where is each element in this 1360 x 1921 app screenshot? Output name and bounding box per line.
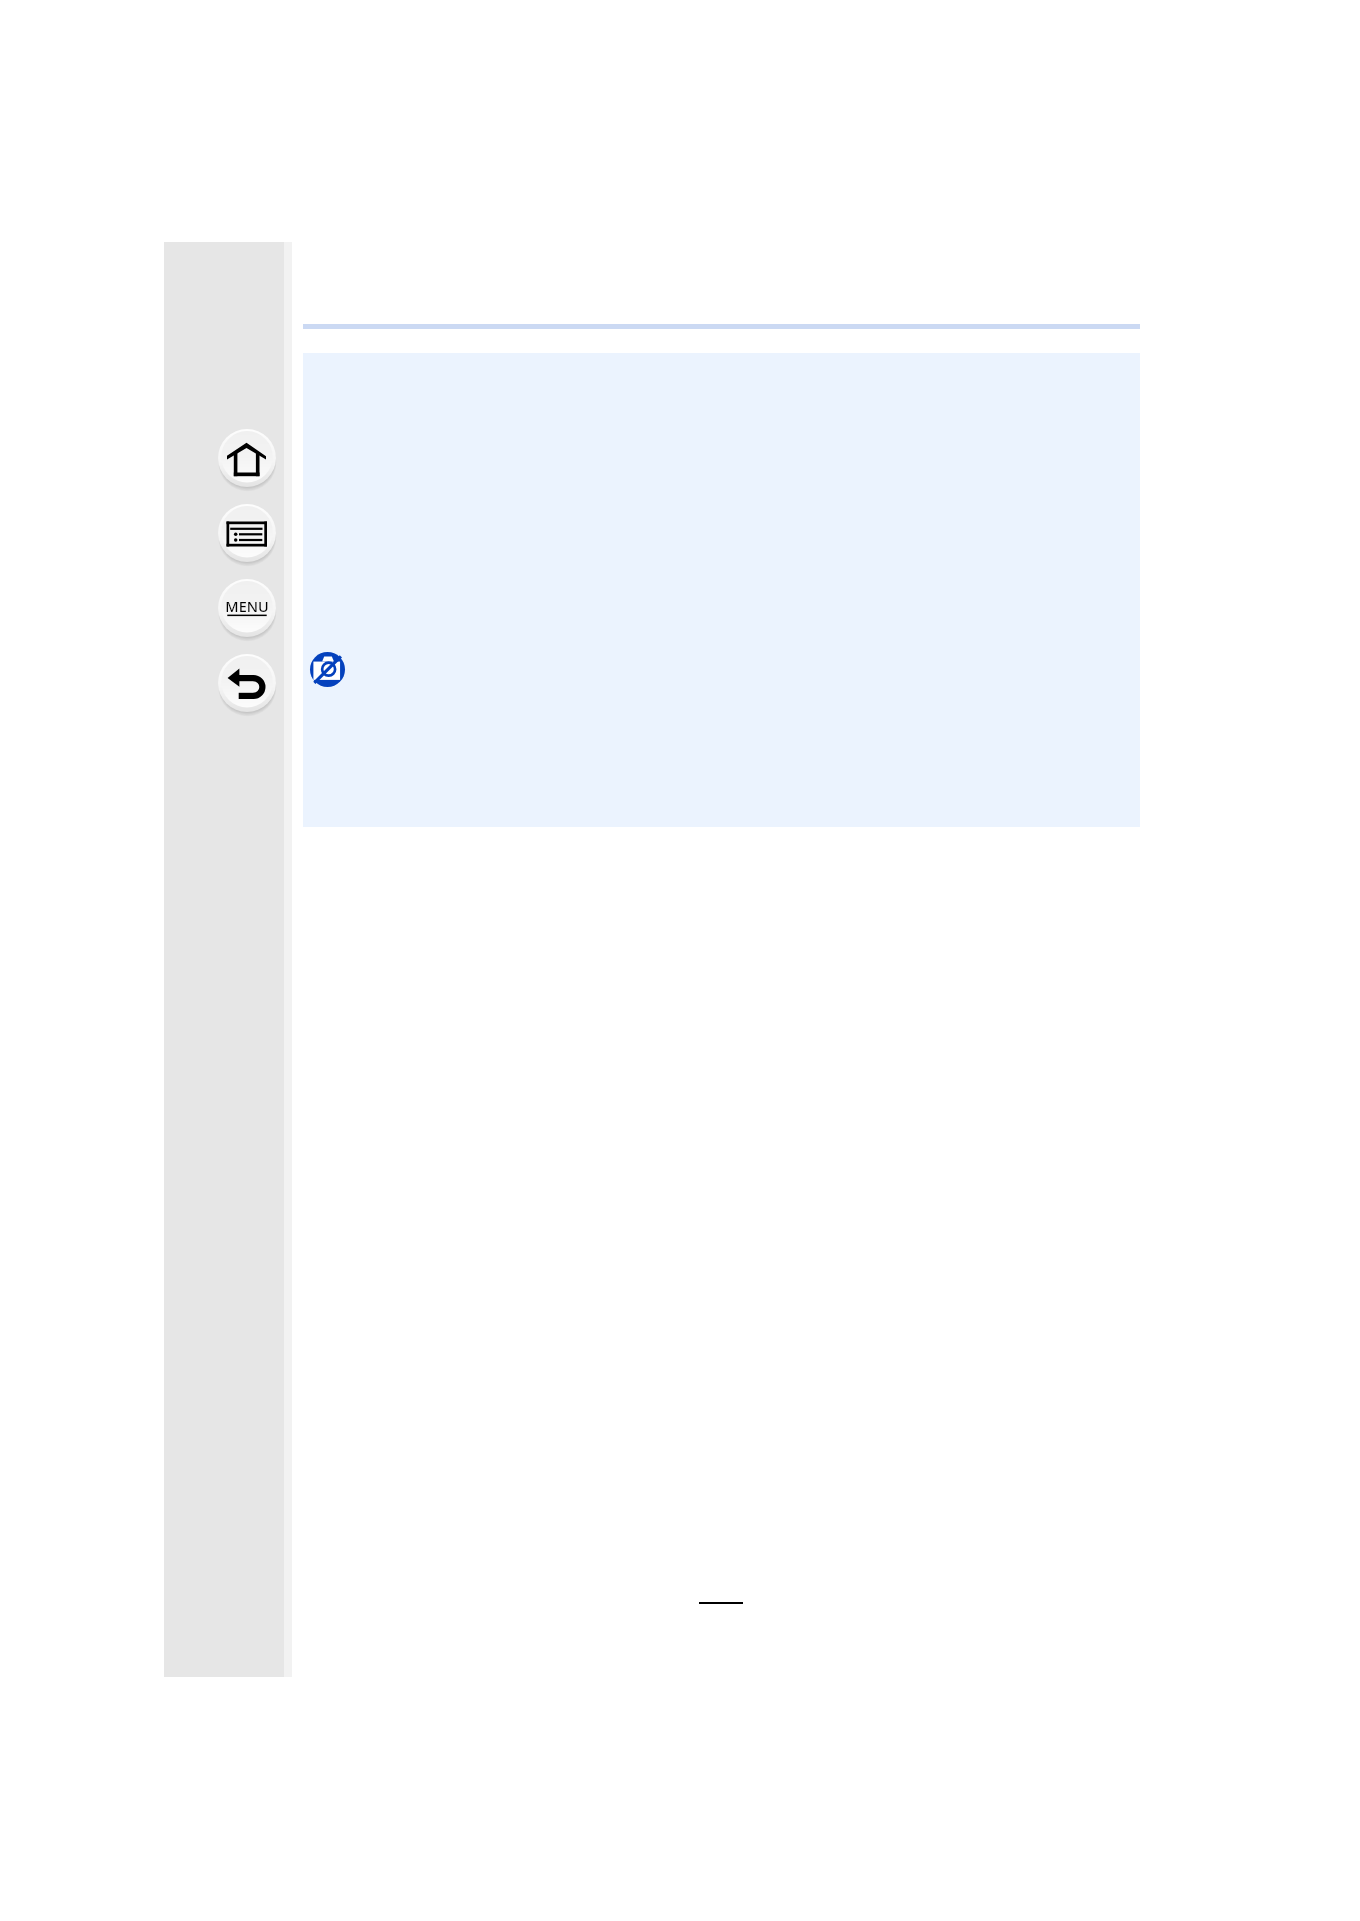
button[interactable]: Home	[218, 429, 276, 487]
button[interactable]: Menu	[218, 579, 276, 637]
button[interactable]: Not available in recording mode	[310, 652, 345, 687]
button[interactable]: Contents	[218, 504, 276, 562]
staticText: MENU	[225, 596, 269, 616]
button[interactable]: Back	[218, 654, 276, 712]
